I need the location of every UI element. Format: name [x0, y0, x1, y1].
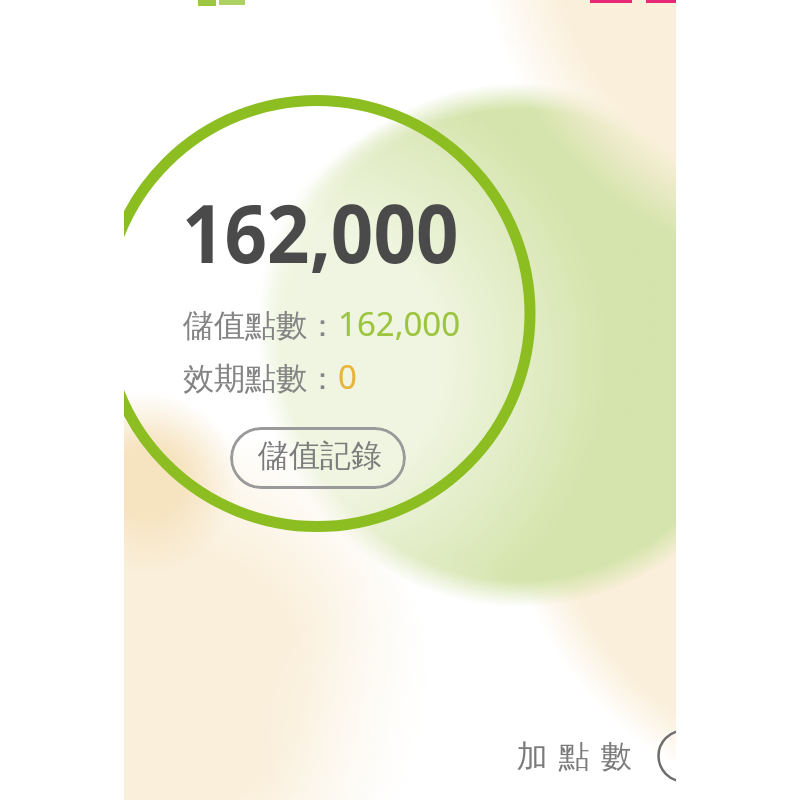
staticText: 加點數 — [511, 737, 637, 776]
staticText: 162,000 — [182, 177, 459, 286]
staticText: 儲值記錄 — [258, 436, 382, 475]
staticText: 儲值點數：162,000 — [183, 301, 461, 346]
staticText: 效期點數：0 — [183, 354, 357, 399]
button[interactable]: Add points — [659, 730, 676, 782]
button[interactable]: 儲值記錄 — [230, 427, 406, 489]
button[interactable]: 加點數 — [499, 724, 669, 784]
